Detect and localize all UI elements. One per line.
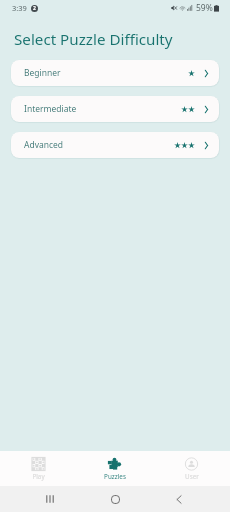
button[interactable]: Recent apps bbox=[29, 486, 71, 512]
button[interactable]: Play bbox=[0, 451, 76, 486]
button[interactable]: Home bbox=[94, 486, 136, 512]
staticText: 2 bbox=[33, 5, 36, 12]
staticText: Advanced bbox=[24, 139, 64, 151]
staticText: User bbox=[185, 472, 199, 481]
button[interactable]: Advanced bbox=[11, 132, 219, 158]
button[interactable]: Intermediate bbox=[11, 96, 219, 122]
button[interactable]: Back bbox=[158, 486, 200, 512]
button[interactable]: Beginner bbox=[11, 60, 219, 86]
staticText: Beginner bbox=[24, 67, 61, 79]
staticText: Puzzles bbox=[104, 472, 126, 481]
button[interactable]: Puzzles bbox=[76, 451, 153, 486]
button[interactable]: User bbox=[153, 451, 230, 486]
staticText: Play bbox=[32, 472, 45, 481]
staticText: Intermediate bbox=[24, 103, 77, 115]
staticText: 59% bbox=[196, 2, 213, 14]
staticText: 3:39 bbox=[12, 3, 27, 13]
staticText: Select Puzzle Difficulty bbox=[14, 29, 173, 50]
